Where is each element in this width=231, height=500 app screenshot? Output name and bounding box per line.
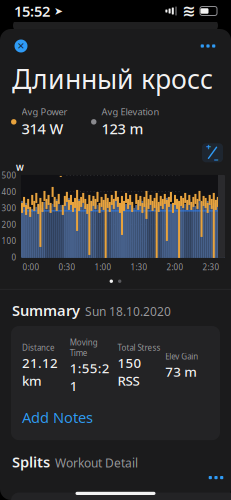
staticText: Avg Power [21,105,67,118]
staticText: Add Notes [22,408,93,427]
staticText: Elev Gain [165,351,198,362]
staticText: 2:30 [202,262,219,272]
staticText: 73 m [165,363,197,380]
staticText: 1:00 [94,262,111,272]
staticText: 100 [1,236,16,246]
staticText: 400 [1,186,16,197]
staticText: ➤ [50,5,63,17]
staticText: Summary [12,300,80,320]
staticText: Moving Time [70,337,98,358]
staticText: Splits [12,452,50,472]
staticText: Длинный кросс [12,61,213,96]
staticText: 2:00 [166,262,183,272]
staticText: 500 [1,170,16,181]
staticText: Distance [22,342,55,353]
staticText: + [206,140,211,153]
button[interactable]: Splits options [203,468,229,488]
staticText: W [16,162,24,173]
staticText: 300 [1,203,16,213]
staticText: 0:00 [22,262,39,272]
staticText: 1:30 [130,262,147,272]
staticText: 0:30 [58,262,75,272]
staticText: 150 RSS [117,354,141,389]
button[interactable]: Add Notes [11,395,220,440]
staticText: 21.12 km [22,354,58,389]
staticText: Total Stress [117,342,160,353]
staticText: – [214,153,219,165]
staticText: Workout Detail [55,455,138,471]
button[interactable]: 1:47:46 [11,493,231,500]
staticText: 15:52 [14,1,50,21]
staticText: 0 [11,252,16,263]
staticText: 314 W [21,119,63,138]
staticText: Sun 18.10.2020 [85,303,171,319]
button[interactable]: Close [10,35,32,57]
button[interactable]: Adjust chart scale [202,143,223,162]
staticText: 123 m [101,119,143,138]
staticText: ≋ [182,2,195,20]
staticText: ✕ [17,41,25,51]
staticText: 200 [1,219,16,230]
button[interactable]: More options [195,36,221,56]
staticText: Avg Elevation [101,105,159,118]
staticText: 1:55:21 [70,359,110,395]
